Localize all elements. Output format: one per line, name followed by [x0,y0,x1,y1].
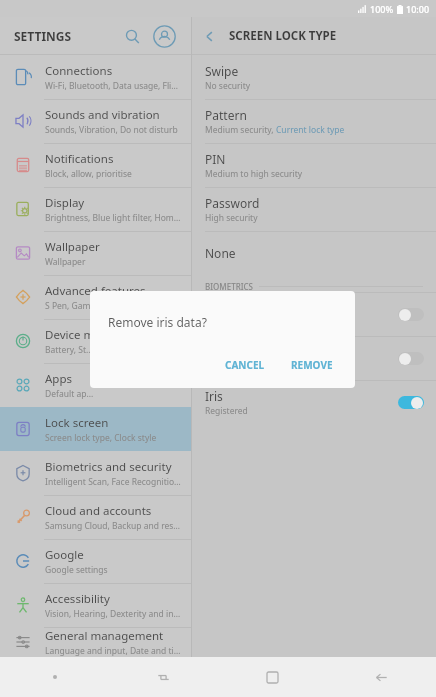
button[interactable]: Notifications [0,143,191,187]
button[interactable]: Intelligent Scan [192,292,436,336]
staticText: REMOVE [291,358,333,372]
staticText: Language and input, Date and time,... [45,645,183,657]
staticText: Display [45,195,85,211]
staticText: Google [45,547,84,563]
staticText: Block, allow, prioritise [45,168,132,180]
staticText: Biometrics and security [45,459,172,475]
staticText: Intelligent Scan, Face Recognition,... [45,476,183,488]
button[interactable]: Display [0,187,191,231]
button[interactable]: Lock screen [0,407,191,451]
button[interactable]: None [192,231,436,275]
staticText: Screen lock type, Clock style [45,432,157,444]
staticText: Apps [45,371,73,387]
button[interactable]: Wallpaper [0,231,191,275]
staticText: Iris [205,388,223,404]
button[interactable]: PIN [192,143,436,187]
staticText: Cloud and accounts [45,503,152,519]
staticText: Registered [205,405,248,417]
button[interactable]: Face [192,336,436,380]
staticText: None [205,245,236,261]
staticText: Use face and iris together for better [205,317,349,329]
staticText: Password [205,195,260,211]
staticText: CANCEL [225,358,265,372]
button[interactable]: Account [149,21,179,51]
staticText: High security [205,212,258,224]
button[interactable]: Back [327,657,436,697]
button[interactable]: Search [117,21,147,51]
staticText: General management [45,628,164,644]
button[interactable]: Sounds and vibration [0,99,191,143]
staticText: Registered [205,361,248,373]
staticText: Wi-Fi, Bluetooth, Data usage, Flight... [45,80,183,92]
staticText: Vision, Hearing, Dexterity and intera... [45,608,183,620]
button[interactable]: REMOVE [281,350,343,380]
button[interactable]: CANCEL [215,350,275,380]
staticText: Brightness, Blue light filter, Home sc..… [45,212,183,224]
staticText: Pattern [205,107,247,123]
button[interactable]: Device m... [0,319,191,363]
button[interactable]: Iris [192,380,436,424]
staticText: Wallpaper [45,256,86,268]
button[interactable]: General management [0,627,191,657]
staticText: Google settings [45,564,108,576]
staticText: Connections [45,63,113,79]
button[interactable]: Swipe [192,55,436,99]
staticText: Sounds and vibration [45,107,160,123]
staticText: Notifications [45,151,114,167]
staticText: 10:00 [406,3,430,15]
staticText: S Pen, Gam... [45,300,98,312]
staticText: Advanced features [45,283,146,299]
staticText: SCREEN LOCK TYPE [229,28,337,44]
staticText: Battery, St... [45,344,93,356]
staticText: 100% [370,3,394,15]
staticText: BIOMETRICS [205,281,253,292]
button[interactable]: Switch [109,657,218,697]
staticText: Remove iris data? [108,314,207,330]
staticText: Medium to high security [205,168,303,180]
staticText: Device m... [45,327,104,343]
button[interactable]: Connections [0,55,191,99]
staticText: Medium security, [205,124,276,136]
button[interactable]: Apps [0,363,191,407]
staticText: Samsung Cloud, Backup and restor... [45,520,183,532]
staticText: Accessibility [45,591,110,607]
staticText: PIN [205,151,226,167]
button[interactable]: Cloud and accounts [0,495,191,539]
staticText: Sounds, Vibration, Do not disturb [45,124,178,136]
staticText: Default ap... [45,388,94,400]
button[interactable]: Google [0,539,191,583]
button[interactable]: Back [192,19,226,53]
button[interactable]: Pattern [192,99,436,143]
button[interactable]: Biometrics and security [0,451,191,495]
staticText: Wallpaper [45,239,100,255]
button[interactable]: Password [192,187,436,231]
button[interactable]: Advanced features [0,275,191,319]
staticText: Lock screen [45,415,109,431]
staticText: Current lock type [276,124,345,136]
button[interactable]: Accessibility [0,583,191,627]
button[interactable]: Recents [218,657,327,697]
staticText: No security [205,80,251,92]
staticText: Swipe [205,63,239,79]
staticText: SETTINGS [14,28,72,44]
